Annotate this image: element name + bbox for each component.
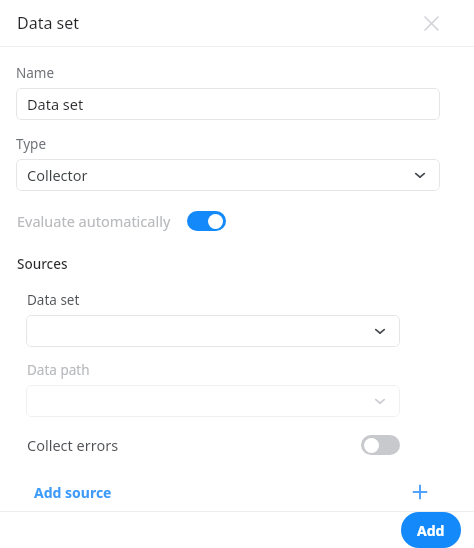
button[interactable]: Evaluate automatically <box>0 206 474 236</box>
button[interactable] <box>26 385 400 417</box>
button[interactable]: Add <box>401 512 461 548</box>
staticText: Add <box>417 521 445 540</box>
button[interactable] <box>26 315 400 347</box>
staticText: Data set <box>17 12 80 34</box>
staticText: Sources <box>17 255 68 273</box>
staticText: Type <box>16 135 47 153</box>
staticText: Collector <box>27 165 88 185</box>
button[interactable]: Switch off <box>361 435 400 455</box>
button[interactable]: Add source <box>407 479 433 505</box>
staticText: Evaluate automatically <box>17 211 171 231</box>
button[interactable]: Collect errors <box>0 430 474 460</box>
staticText: Data set <box>27 94 84 114</box>
button[interactable]: Data set <box>16 88 440 120</box>
staticText: Collect errors <box>27 435 119 455</box>
button[interactable]: Close <box>418 10 444 36</box>
staticText: Add source <box>34 483 112 502</box>
button[interactable]: Collector <box>16 159 440 191</box>
button[interactable]: Switch on <box>187 211 226 231</box>
staticText: Data path <box>27 361 90 379</box>
staticText: Name <box>16 64 55 82</box>
staticText: Data set <box>27 291 80 309</box>
button[interactable]: Add source <box>0 478 474 506</box>
